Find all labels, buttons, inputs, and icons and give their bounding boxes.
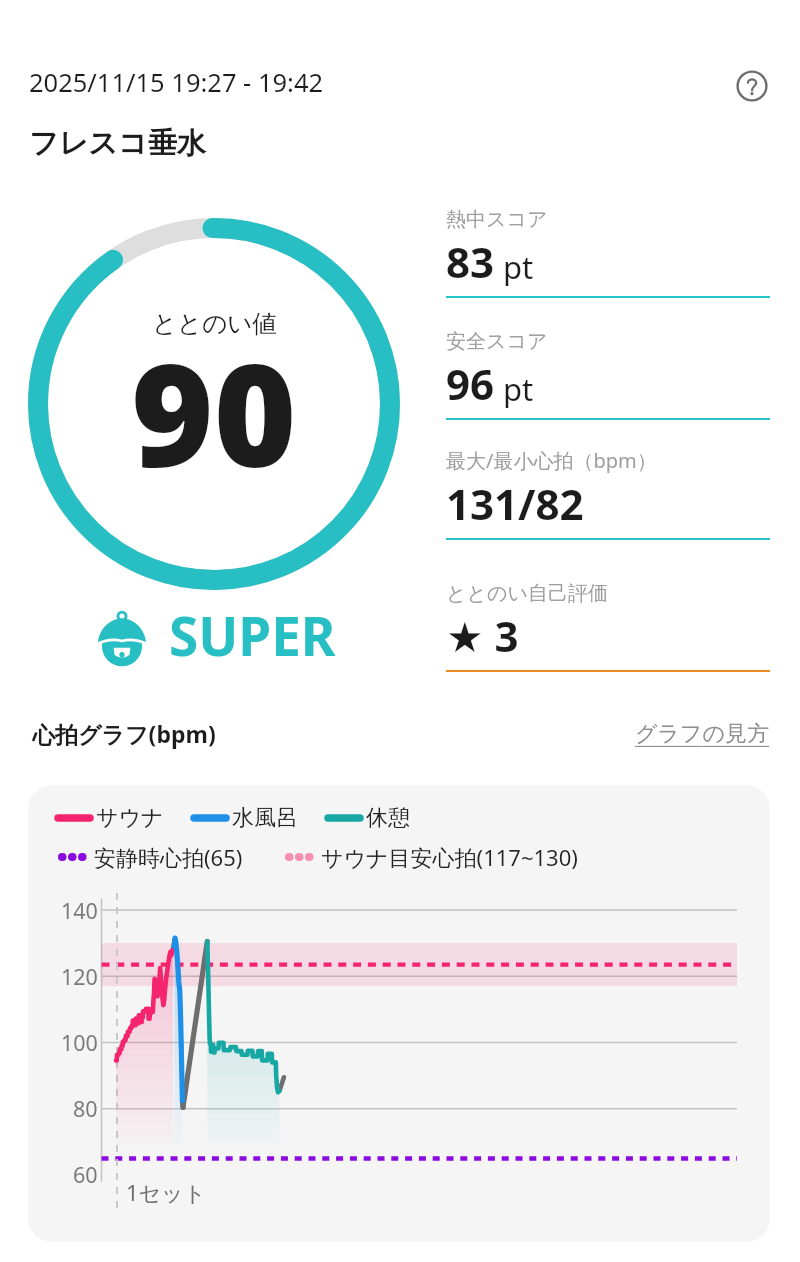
staticText: SUPER (169, 599, 336, 671)
staticText: 96 (446, 355, 495, 412)
staticText: 2025/11/15 19:27 - 19:42 (29, 65, 324, 100)
staticText: サウナ (96, 804, 164, 832)
staticText: ★ 3 (446, 607, 519, 664)
button[interactable]: グラフの見方 (635, 720, 770, 748)
staticText: pt (495, 246, 534, 288)
staticText: フレスコ垂水 (29, 125, 206, 162)
staticText: 安静時心拍(65) (94, 842, 243, 872)
staticText: サウナ目安心拍(117~130) (321, 842, 578, 872)
staticText: 休憩 (366, 804, 410, 832)
staticText: 水風呂 (232, 804, 298, 832)
staticText: 120 (61, 962, 98, 991)
staticText: 80 (73, 1094, 98, 1123)
staticText: pt (495, 368, 534, 410)
staticText: 1セット (126, 1177, 207, 1207)
staticText: 安全スコア (446, 329, 548, 354)
staticText: 熱中スコア (446, 207, 548, 232)
staticText: 131/82 (446, 475, 584, 532)
staticText: 140 (61, 896, 98, 925)
staticText: 100 (61, 1028, 98, 1057)
staticText: 60 (73, 1160, 98, 1189)
staticText: ととのい値 (152, 308, 277, 339)
staticText: 心拍グラフ(bpm) (32, 718, 216, 749)
staticText: 83 (446, 233, 495, 290)
staticText: ととのい自己評価 (446, 581, 608, 606)
staticText: 90 (131, 316, 297, 508)
staticText: 最大/最小心拍（bpm） (446, 447, 657, 474)
button[interactable]: Help (730, 64, 774, 108)
